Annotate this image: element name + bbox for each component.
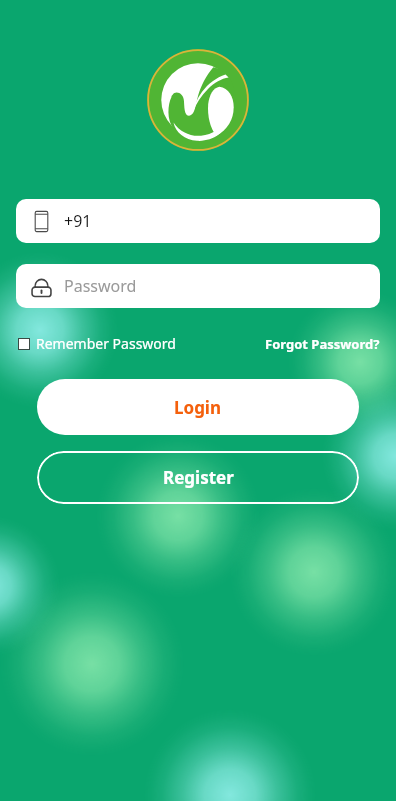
button[interactable]: Login <box>37 379 359 435</box>
staticText: Password <box>64 275 137 297</box>
staticText: Register <box>163 466 234 489</box>
button[interactable]: Remember Password <box>18 334 176 353</box>
button[interactable]: Register <box>37 451 359 504</box>
staticText: Login <box>174 396 222 419</box>
other: Phone number <box>31 211 52 232</box>
button[interactable]: Forgot Password? <box>265 335 380 353</box>
other: Password <box>31 276 52 297</box>
staticText: +91 <box>64 210 92 232</box>
button[interactable]: Password <box>16 264 380 308</box>
button[interactable]: Phone number <box>16 199 380 243</box>
staticText: Remember Password <box>36 334 176 353</box>
